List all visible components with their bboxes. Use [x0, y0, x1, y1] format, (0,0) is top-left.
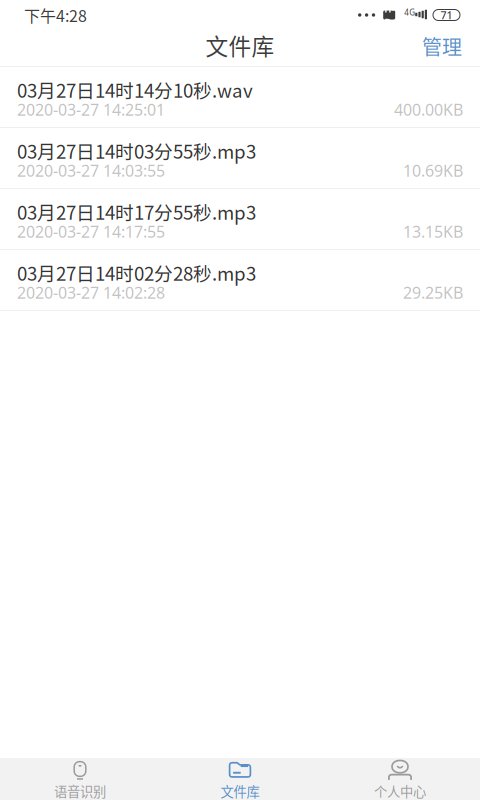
staticText: 2020-03-27 14:02:28: [17, 282, 165, 303]
staticText: 2020-03-27 14:03:55: [17, 160, 165, 181]
button[interactable]: 个人中心: [320, 758, 480, 800]
staticText: 2020-03-27 14:17:55: [17, 221, 165, 242]
button[interactable]: 管理: [404, 25, 480, 70]
staticText: 13.15KB: [403, 221, 463, 242]
staticText: 03月27日14时02分28秒.mp3: [17, 259, 256, 286]
staticText: 400.00KB: [394, 99, 463, 120]
staticText: 下午4:28: [24, 3, 87, 27]
button[interactable]: 语音识别: [0, 758, 160, 800]
button[interactable]: 文件库: [160, 758, 320, 800]
staticText: 个人中心: [374, 781, 426, 800]
staticText: 10.69KB: [403, 160, 463, 181]
button[interactable]: 03月27日14时14分10秒.wav: [0, 67, 480, 128]
staticText: 语音识别: [54, 781, 106, 800]
button[interactable]: 03月27日14时02分28秒.mp3: [0, 250, 480, 311]
staticText: 管理: [422, 31, 462, 60]
staticText: 4G: [404, 7, 415, 18]
staticText: 03月27日14时14分10秒.wav: [17, 76, 253, 103]
staticText: 2020-03-27 14:25:01: [17, 99, 165, 120]
staticText: 文件库: [220, 781, 259, 800]
staticText: 文件库: [205, 29, 274, 61]
staticText: 29.25KB: [403, 282, 463, 303]
staticText: 71: [440, 8, 452, 22]
button[interactable]: 03月27日14时17分55秒.mp3: [0, 189, 480, 250]
staticText: 03月27日14时03分55秒.mp3: [17, 137, 256, 164]
staticText: 03月27日14时17分55秒.mp3: [17, 198, 256, 225]
staticText: HD: [384, 3, 394, 27]
button[interactable]: 03月27日14时03分55秒.mp3: [0, 128, 480, 189]
